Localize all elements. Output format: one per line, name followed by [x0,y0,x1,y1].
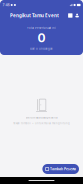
button[interactable]: Tambah Peserta [42,164,79,174]
staticText: Total Peserta Saat Ini [27,26,56,30]
staticText: 7:46 [2,3,9,7]
staticText: 0 [37,31,45,45]
staticText: Tambah Peserta [50,167,76,171]
staticText: Pengikut Tamu Event [10,12,59,19]
button[interactable]: Akun [74,12,80,19]
staticText: Belum ada data peserta [26,116,57,119]
staticText: dari 0 undangan [30,47,53,50]
staticText: Tekan tombol + untuk mulai menghitung [13,122,70,125]
button[interactable]: Daftar [67,12,74,19]
